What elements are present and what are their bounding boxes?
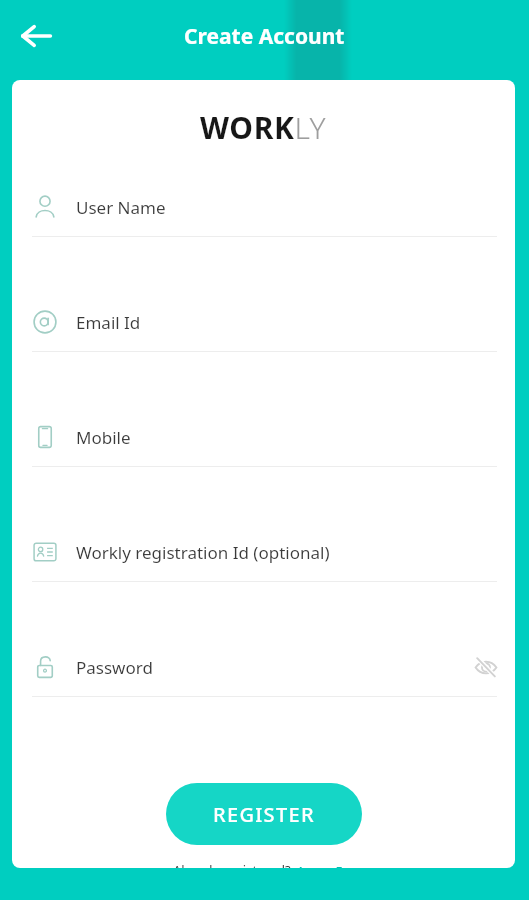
button[interactable]: Email Id [12,293,515,408]
button[interactable]: Password [12,638,515,753]
button[interactable]: Mobile [12,408,515,523]
button[interactable]: Log In [298,861,355,868]
other: Show password [473,654,499,680]
staticText: Create Account [184,22,345,51]
button[interactable]: REGISTER [166,783,362,845]
staticText: Workly registration Id (optional) [76,541,330,564]
staticText: User Name [76,196,166,219]
staticText: Already registered? [173,861,291,868]
staticText: Password [76,656,153,679]
staticText: Email Id [76,311,141,334]
staticText: Log In [298,861,355,868]
staticText: Mobile [76,426,131,449]
button[interactable]: Workly registration Id (optional) [12,523,515,638]
button[interactable]: User Name [12,178,515,293]
staticText: REGISTER [213,801,315,828]
button[interactable]: Back [10,10,62,62]
staticText: WORKLY [200,107,327,148]
